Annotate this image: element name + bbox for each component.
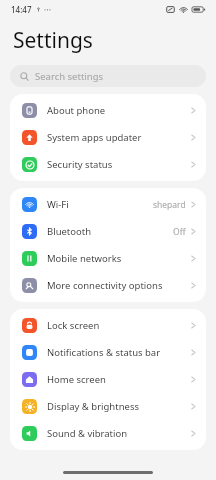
button[interactable]: Sound & vibration <box>10 420 206 447</box>
staticText: Sound & vibration <box>47 427 128 440</box>
staticText: Settings <box>13 26 93 55</box>
button[interactable]: More connectivity options <box>10 272 206 299</box>
button[interactable]: Notifications & status bar <box>10 339 206 366</box>
staticText: Notifications & status bar <box>47 346 161 359</box>
button[interactable]: Display & brightness <box>10 393 206 420</box>
staticText: Display & brightness <box>47 400 139 413</box>
staticText: More connectivity options <box>47 279 163 292</box>
button[interactable]: System apps updater <box>10 124 206 151</box>
staticText: Security status <box>47 158 113 171</box>
button[interactable]: Bluetooth <box>10 218 206 245</box>
staticText: Bluetooth <box>47 225 92 238</box>
staticText: Home screen <box>47 373 106 386</box>
staticText: Lock screen <box>47 319 100 332</box>
staticText: Off <box>173 226 186 238</box>
staticText: 14:47 <box>11 4 32 15</box>
staticText: Wi-Fi <box>47 198 69 211</box>
button[interactable]: Mobile networks <box>10 245 206 272</box>
button[interactable]: About phone <box>10 97 206 124</box>
staticText: About phone <box>47 104 106 117</box>
button[interactable]: Search settings <box>10 65 206 87</box>
button[interactable]: Lock screen <box>10 312 206 339</box>
button[interactable]: Home screen <box>10 366 206 393</box>
staticText: Mobile networks <box>47 252 122 265</box>
staticText: Search settings <box>35 70 104 83</box>
staticText: System apps updater <box>47 131 142 144</box>
staticText: shepard <box>153 199 186 211</box>
button[interactable]: Wi-Fi <box>10 191 206 218</box>
button[interactable]: Security status <box>10 151 206 178</box>
